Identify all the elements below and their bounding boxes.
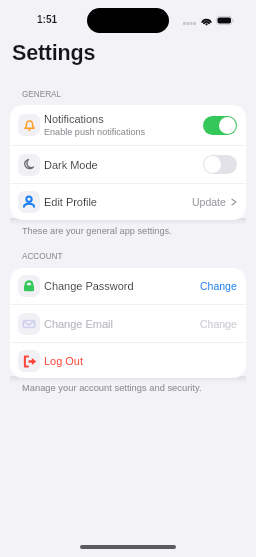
- button[interactable]: Edit Profile: [10, 184, 246, 220]
- button[interactable]: Dark Mode: [10, 146, 246, 183]
- button[interactable]: Notifications: [10, 105, 246, 145]
- staticText: Dark Mode: [44, 159, 98, 171]
- staticText: Enable push notifications: [44, 127, 146, 137]
- staticText: Log Out: [44, 355, 83, 367]
- button[interactable]: Log Out: [10, 343, 246, 378]
- staticText: Update: [192, 196, 226, 208]
- staticText: Edit Profile: [44, 196, 97, 208]
- staticText: GENERAL: [22, 90, 62, 99]
- staticText: Change: [200, 280, 237, 292]
- button[interactable]: Change Email: [10, 305, 246, 342]
- staticText: Notifications: [44, 113, 104, 125]
- staticText: Change Password: [44, 280, 134, 292]
- staticText: 1:51: [37, 14, 58, 25]
- button[interactable]: Turn off: [203, 116, 237, 135]
- staticText: These are your general app settings.: [22, 226, 172, 236]
- staticText: Change: [200, 318, 237, 330]
- button[interactable]: Turn on: [203, 155, 237, 174]
- staticText: Manage your account settings and securit…: [22, 383, 202, 393]
- button[interactable]: Change Password: [10, 268, 246, 304]
- staticText: Settings: [12, 41, 96, 65]
- staticText: ACCOUNT: [22, 252, 63, 261]
- staticText: Change Email: [44, 318, 113, 330]
